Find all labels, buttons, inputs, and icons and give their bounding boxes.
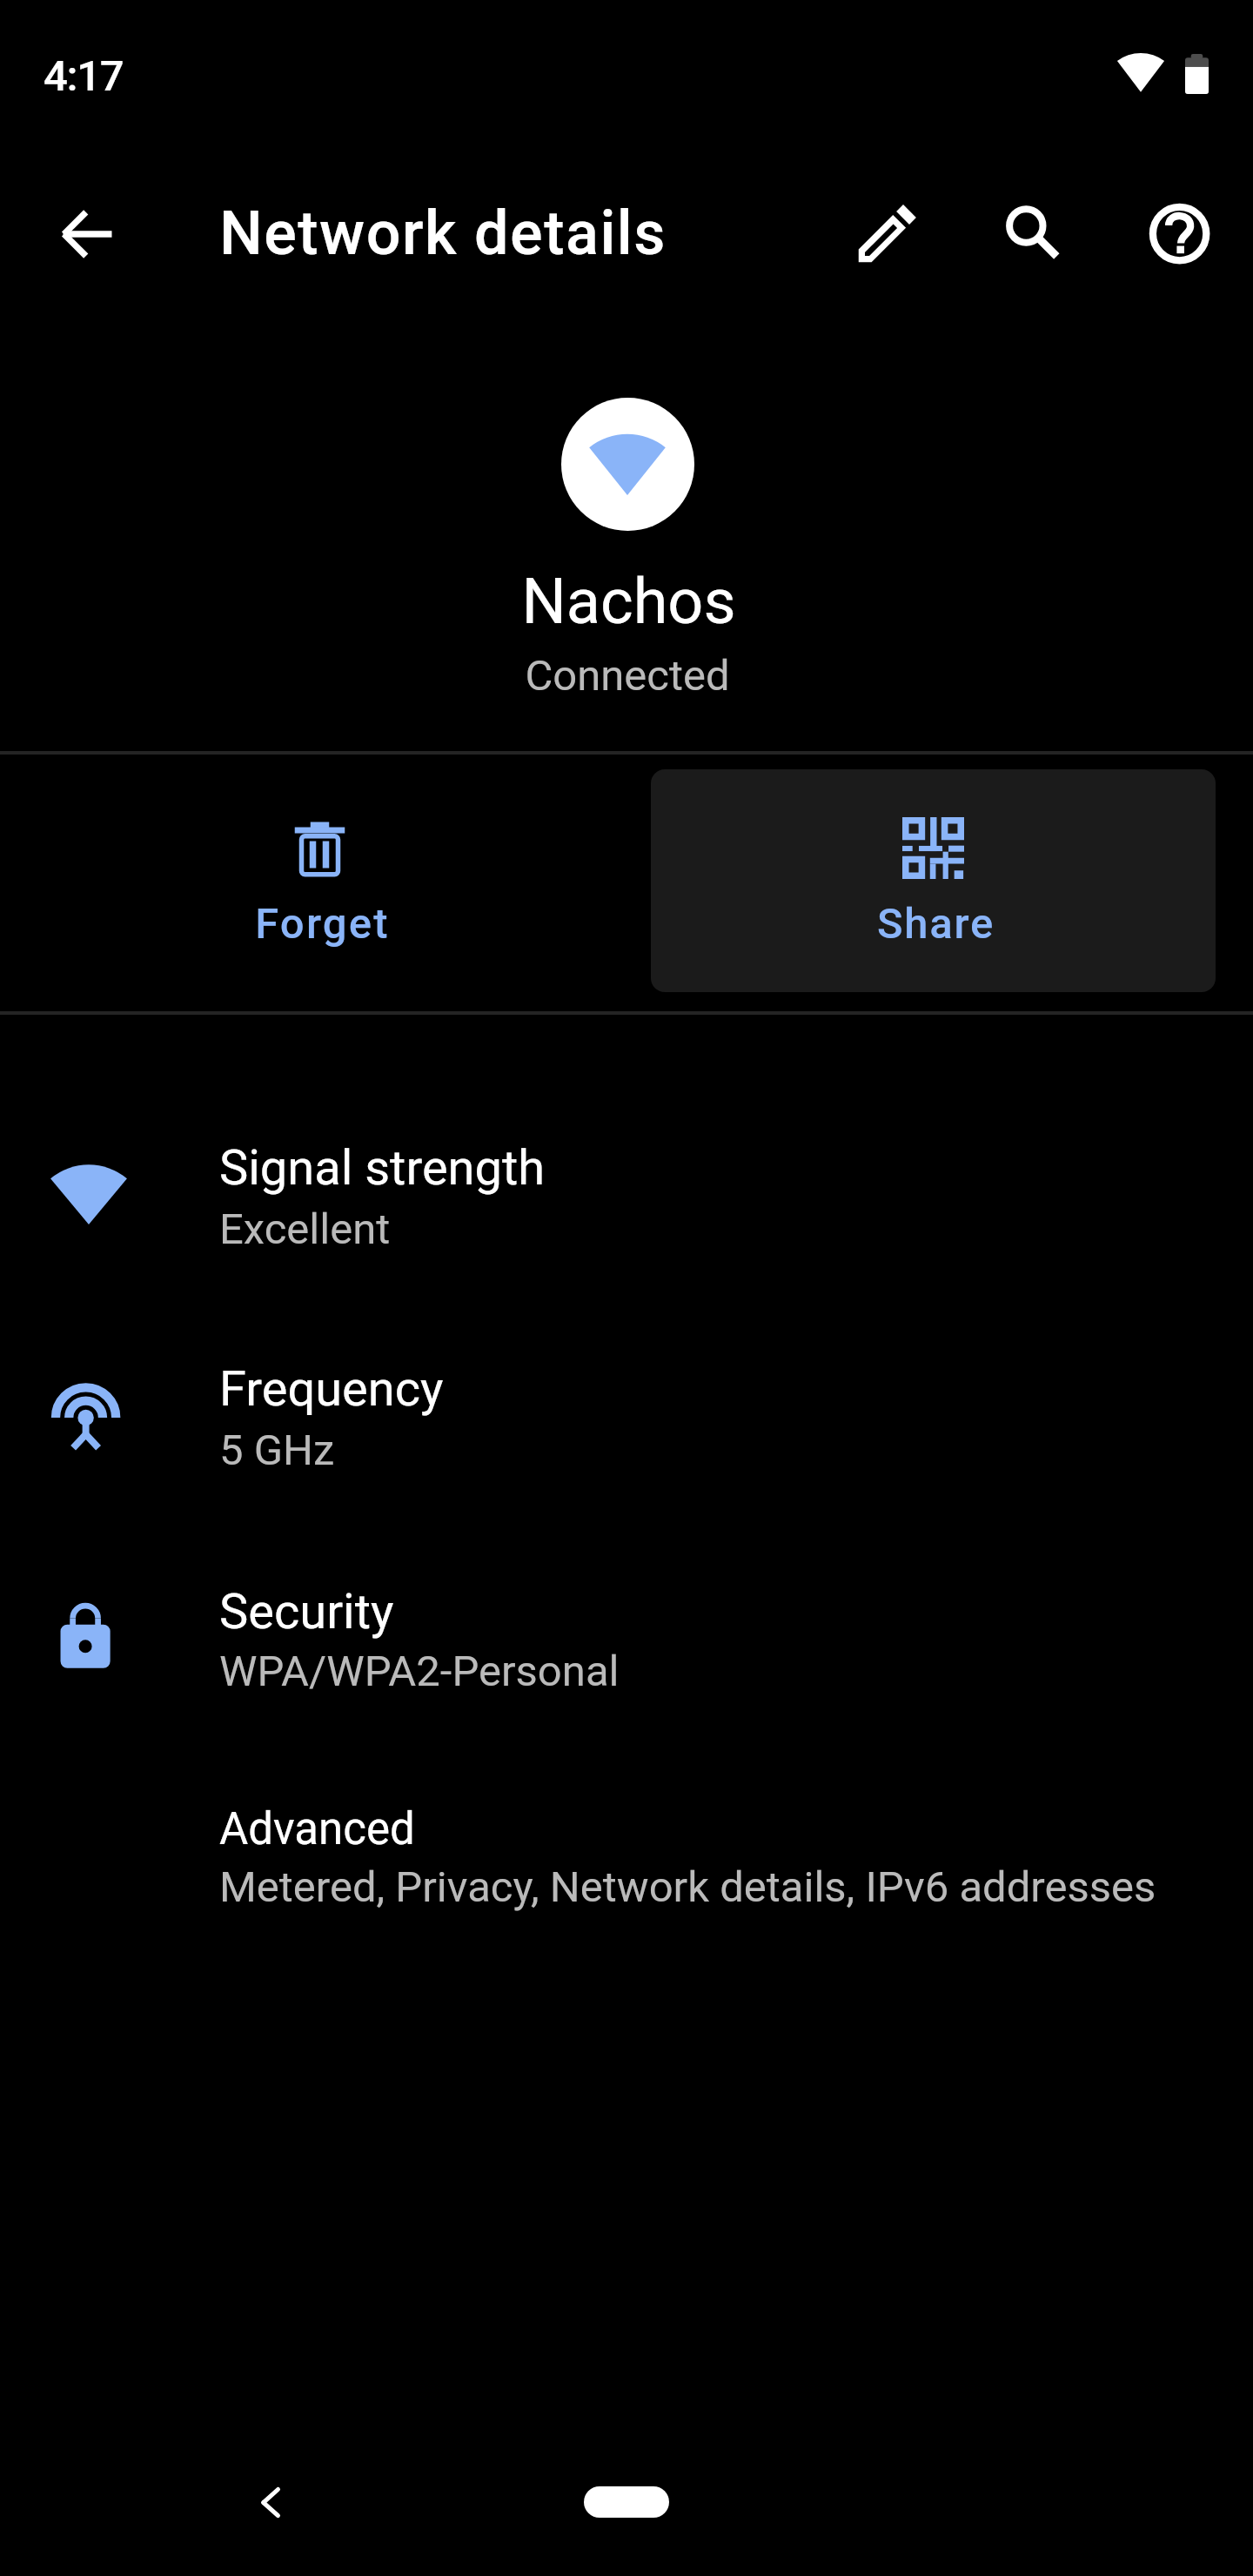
staticText: Signal strength	[219, 1139, 546, 1197]
button[interactable]: Advanced	[0, 1761, 1253, 1970]
staticText: Forget	[255, 899, 390, 949]
staticText: WPA/WPA2-Personal	[219, 1647, 620, 1696]
button[interactable]: Search	[961, 160, 1107, 306]
button[interactable]: Frequency	[0, 1307, 1253, 1528]
button[interactable]: Share	[651, 769, 1216, 992]
staticText: Advanced	[219, 1803, 415, 1855]
button[interactable]: Back	[210, 2441, 332, 2563]
button[interactable]: Navigate up	[12, 160, 158, 306]
button[interactable]: Forget	[37, 769, 602, 992]
staticText: 5 GHz	[219, 1426, 335, 1475]
staticText: 4:17	[44, 51, 124, 101]
staticText: Share	[877, 899, 995, 949]
button[interactable]: Edit	[814, 160, 961, 306]
button[interactable]: Security	[0, 1526, 1253, 1748]
button[interactable]: Help	[1107, 160, 1253, 306]
staticText: Excellent	[219, 1204, 391, 1254]
button[interactable]: Signal strength	[0, 1084, 1253, 1305]
staticText: Network details	[219, 198, 667, 269]
staticText: Security	[219, 1583, 394, 1640]
staticText: Nachos	[521, 565, 736, 638]
staticText: Frequency	[219, 1360, 444, 1418]
staticText: Metered, Privacy, Network details, IPv6 …	[219, 1862, 1156, 1912]
staticText: Connected	[525, 651, 730, 701]
button[interactable]: Home	[584, 2486, 669, 2518]
